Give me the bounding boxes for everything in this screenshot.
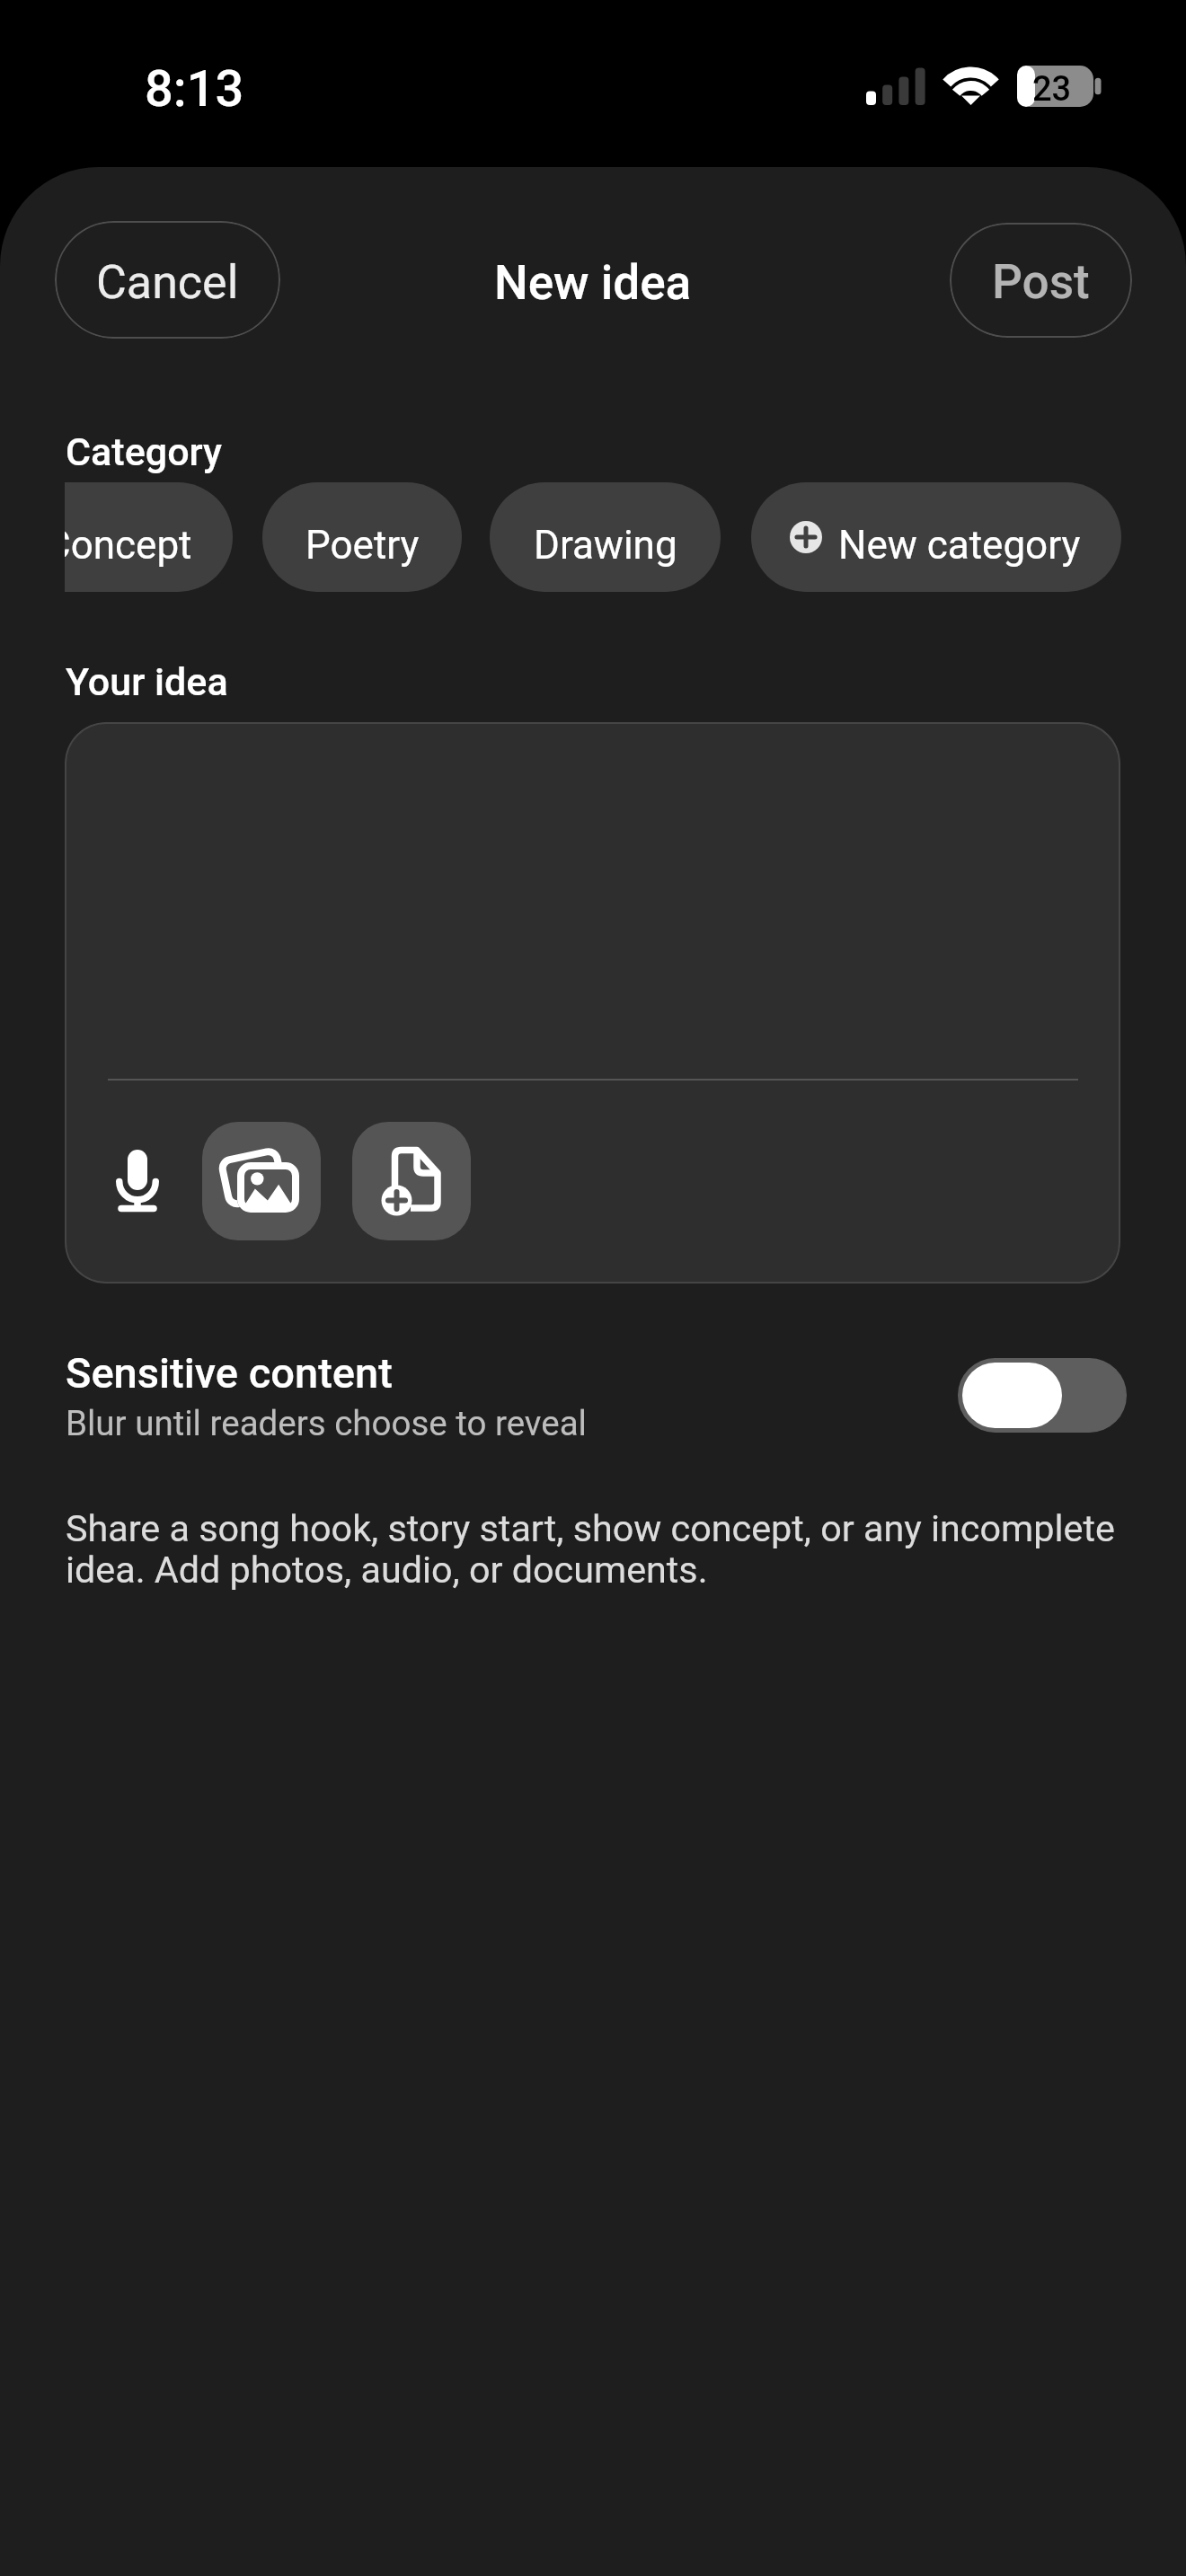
staticText: Cancel (96, 255, 239, 310)
staticText: 8:13 (145, 59, 244, 119)
staticText: Poetry (305, 522, 420, 569)
staticText: Concept (65, 522, 192, 569)
button[interactable]: Drawing (490, 482, 721, 592)
staticText: Share a song hook, story start, show con… (66, 1507, 1126, 1592)
button[interactable]: Cancel (55, 221, 280, 339)
button[interactable]: Post (950, 223, 1132, 338)
button[interactable]: Sensitive content (0, 1338, 1186, 1455)
button[interactable]: Sensitive content toggle (958, 1358, 1127, 1433)
button[interactable]: Record audio (65, 722, 1120, 1284)
staticText: Sensitive content (66, 1348, 393, 1398)
staticText: Category (66, 429, 223, 474)
staticText: New category (838, 522, 1081, 569)
button[interactable]: Concept (65, 482, 233, 592)
button[interactable]: New category (751, 482, 1121, 592)
staticText: Drawing (534, 522, 677, 569)
staticText: Blur until readers choose to reveal (66, 1403, 587, 1443)
staticText: 23 (1032, 69, 1072, 110)
staticText: Post (992, 254, 1090, 310)
staticText: Your idea (66, 659, 228, 704)
button[interactable]: Add photos (202, 1122, 321, 1240)
staticText: New idea (494, 255, 692, 311)
button[interactable]: Poetry (262, 482, 462, 592)
button[interactable]: Add document (352, 1122, 471, 1240)
button[interactable]: Record audio (78, 1122, 197, 1240)
